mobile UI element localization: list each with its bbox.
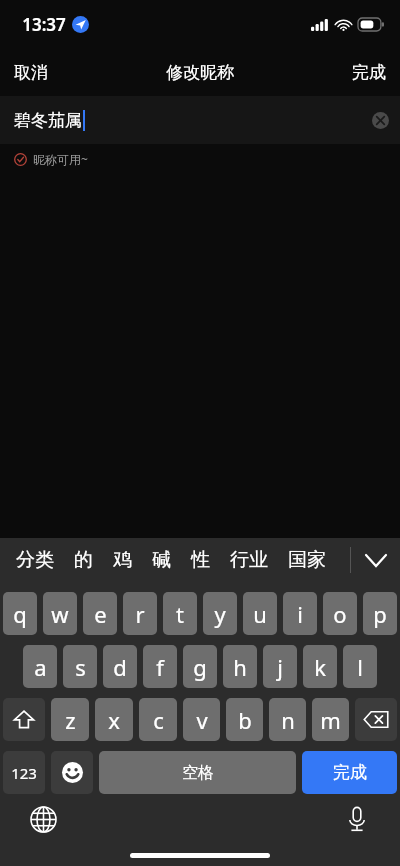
staticText: 碧冬茄属 — [14, 110, 82, 131]
button[interactable]: Shift — [3, 698, 45, 741]
staticText: 完成 — [333, 762, 367, 783]
button[interactable]: 取消 — [0, 52, 62, 93]
button[interactable]: q — [3, 592, 37, 635]
button[interactable]: w — [43, 592, 77, 635]
staticText: p — [373, 599, 387, 629]
staticText: o — [333, 599, 347, 629]
staticText: 国家 — [288, 548, 326, 572]
button[interactable]: j — [263, 645, 297, 688]
button[interactable]: 国家 — [286, 544, 328, 576]
staticText: t — [176, 599, 184, 629]
staticText: 碱 — [152, 548, 171, 572]
staticText: h — [233, 652, 247, 682]
button[interactable]: z — [51, 698, 89, 741]
button[interactable]: 碧冬茄属 — [0, 96, 400, 144]
button[interactable]: 的 — [72, 544, 95, 576]
staticText: 13:37 — [22, 13, 66, 36]
button[interactable]: s — [63, 645, 97, 688]
staticText: j — [277, 652, 283, 682]
staticText: k — [314, 652, 326, 682]
button[interactable]: e — [83, 592, 117, 635]
staticText: i — [297, 599, 303, 629]
button[interactable]: 行业 — [228, 544, 270, 576]
button[interactable]: Emoji — [51, 751, 93, 794]
button[interactable]: Change keyboard — [28, 804, 58, 834]
button[interactable]: n — [269, 698, 306, 741]
button[interactable]: u — [243, 592, 277, 635]
button[interactable]: o — [323, 592, 357, 635]
button[interactable]: Hide candidates — [352, 538, 400, 582]
staticText: z — [65, 705, 76, 735]
button[interactable]: 性 — [189, 544, 212, 576]
staticText: w — [51, 599, 69, 629]
staticText: e — [94, 599, 107, 629]
button[interactable]: k — [303, 645, 337, 688]
staticText: 空格 — [182, 763, 214, 783]
button[interactable]: f — [143, 645, 177, 688]
button[interactable]: y — [203, 592, 237, 635]
staticText: b — [238, 705, 252, 735]
button[interactable]: 鸡 — [111, 544, 134, 576]
button[interactable]: m — [312, 698, 349, 741]
button[interactable]: 123 — [3, 751, 45, 794]
staticText: 昵称可用~ — [33, 151, 88, 167]
staticText: s — [75, 652, 86, 682]
button[interactable]: t — [163, 592, 197, 635]
staticText: a — [34, 652, 47, 682]
staticText: q — [13, 599, 27, 629]
button[interactable]: r — [123, 592, 157, 635]
staticText: u — [253, 599, 267, 629]
staticText: x — [108, 705, 120, 735]
staticText: l — [357, 652, 363, 682]
staticText: 取消 — [14, 62, 48, 83]
staticText: 123 — [11, 763, 37, 783]
staticText: 行业 — [230, 548, 268, 572]
button[interactable]: 碱 — [150, 544, 173, 576]
button[interactable]: v — [183, 698, 220, 741]
staticText: g — [193, 652, 207, 682]
staticText: 修改昵称 — [166, 62, 234, 83]
button[interactable]: a — [23, 645, 57, 688]
button[interactable]: l — [343, 645, 377, 688]
button[interactable]: x — [95, 698, 133, 741]
staticText: y — [214, 599, 226, 629]
staticText: 完成 — [352, 62, 386, 83]
staticText: 鸡 — [113, 548, 132, 572]
button[interactable]: g — [183, 645, 217, 688]
button[interactable]: h — [223, 645, 257, 688]
staticText: d — [113, 652, 127, 682]
staticText: 的 — [74, 548, 93, 572]
button[interactable]: Clear text — [372, 112, 389, 129]
staticText: f — [156, 652, 164, 682]
button[interactable]: 完成 — [338, 52, 400, 93]
button[interactable]: 空格 — [99, 751, 296, 794]
button[interactable]: c — [139, 698, 177, 741]
staticText: c — [153, 705, 164, 735]
button[interactable]: 分类 — [14, 544, 56, 576]
button[interactable]: p — [363, 592, 397, 635]
staticText: n — [281, 705, 295, 735]
button[interactable]: Voice input — [342, 804, 372, 834]
button[interactable]: b — [226, 698, 263, 741]
button[interactable]: Backspace — [355, 698, 397, 741]
staticText: v — [196, 705, 208, 735]
staticText: m — [320, 705, 341, 735]
staticText: 性 — [191, 548, 210, 572]
button[interactable]: 完成 — [302, 751, 397, 794]
button[interactable]: i — [283, 592, 317, 635]
button[interactable]: d — [103, 645, 137, 688]
staticText: 分类 — [16, 548, 54, 572]
staticText: r — [135, 599, 145, 629]
